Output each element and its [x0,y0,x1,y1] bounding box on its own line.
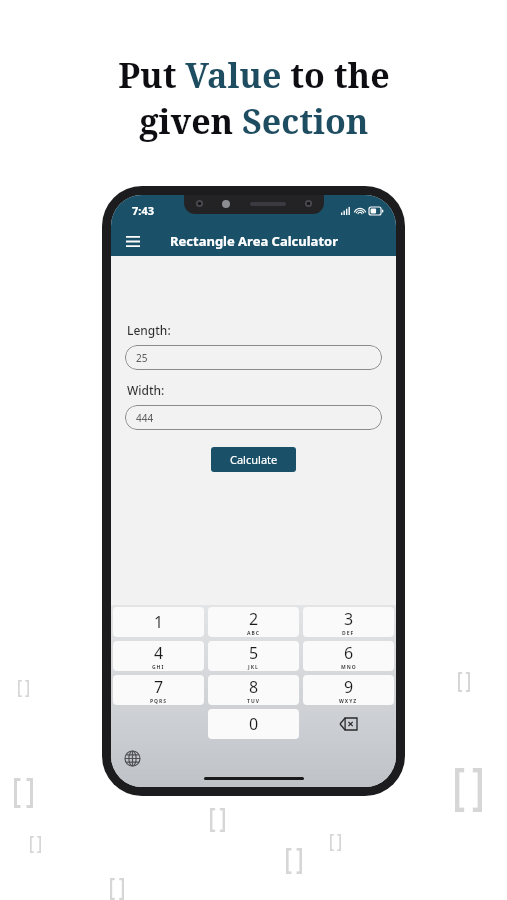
button[interactable]: 1 [113,607,204,637]
staticText: Rectangle Area Calculator [170,232,338,250]
staticText: WXYZ [339,698,358,705]
staticText: 3 [344,608,354,630]
staticText: TUV [247,698,260,705]
button[interactable]: 7 [113,675,204,705]
staticText: PQRS [150,698,168,705]
staticText: 1 [154,611,164,633]
staticText: GHI [152,664,165,671]
staticText: 5 [249,642,259,664]
button[interactable]: Open navigation menu [121,229,145,253]
staticText: Put Value to the given Section [118,52,390,144]
staticText: Calculate [230,452,278,467]
staticText: Width: [127,382,165,398]
staticText: 444 [136,411,154,425]
button[interactable]: Backspace [301,707,396,741]
staticText: ABC [247,630,260,637]
button[interactable]: Calculate [211,447,296,472]
button[interactable]: 25 [125,345,382,370]
staticText: 0 [249,713,259,735]
staticText: 2 [249,608,259,630]
button[interactable]: Change keyboard language [121,747,143,769]
button[interactable]: 444 [125,405,382,430]
staticText: 4 [154,642,164,664]
button[interactable]: 5 [208,641,299,671]
staticText: JKL [248,664,259,671]
staticText: 7 [154,676,164,698]
button[interactable]: 6 [303,641,394,671]
staticText: Length: [127,322,171,338]
staticText: 6 [344,642,354,664]
button[interactable]: 8 [208,675,299,705]
staticText: MNO [341,664,357,671]
staticText: DEF [342,630,355,637]
staticText: 8 [249,676,259,698]
button[interactable]: 9 [303,675,394,705]
button[interactable]: 2 [208,607,299,637]
button[interactable]: 4 [113,641,204,671]
staticText: 9 [344,676,354,698]
button[interactable]: 0 [208,709,299,739]
staticText: 7:43 [132,203,154,218]
button[interactable]: 3 [303,607,394,637]
staticText: 25 [136,351,148,365]
